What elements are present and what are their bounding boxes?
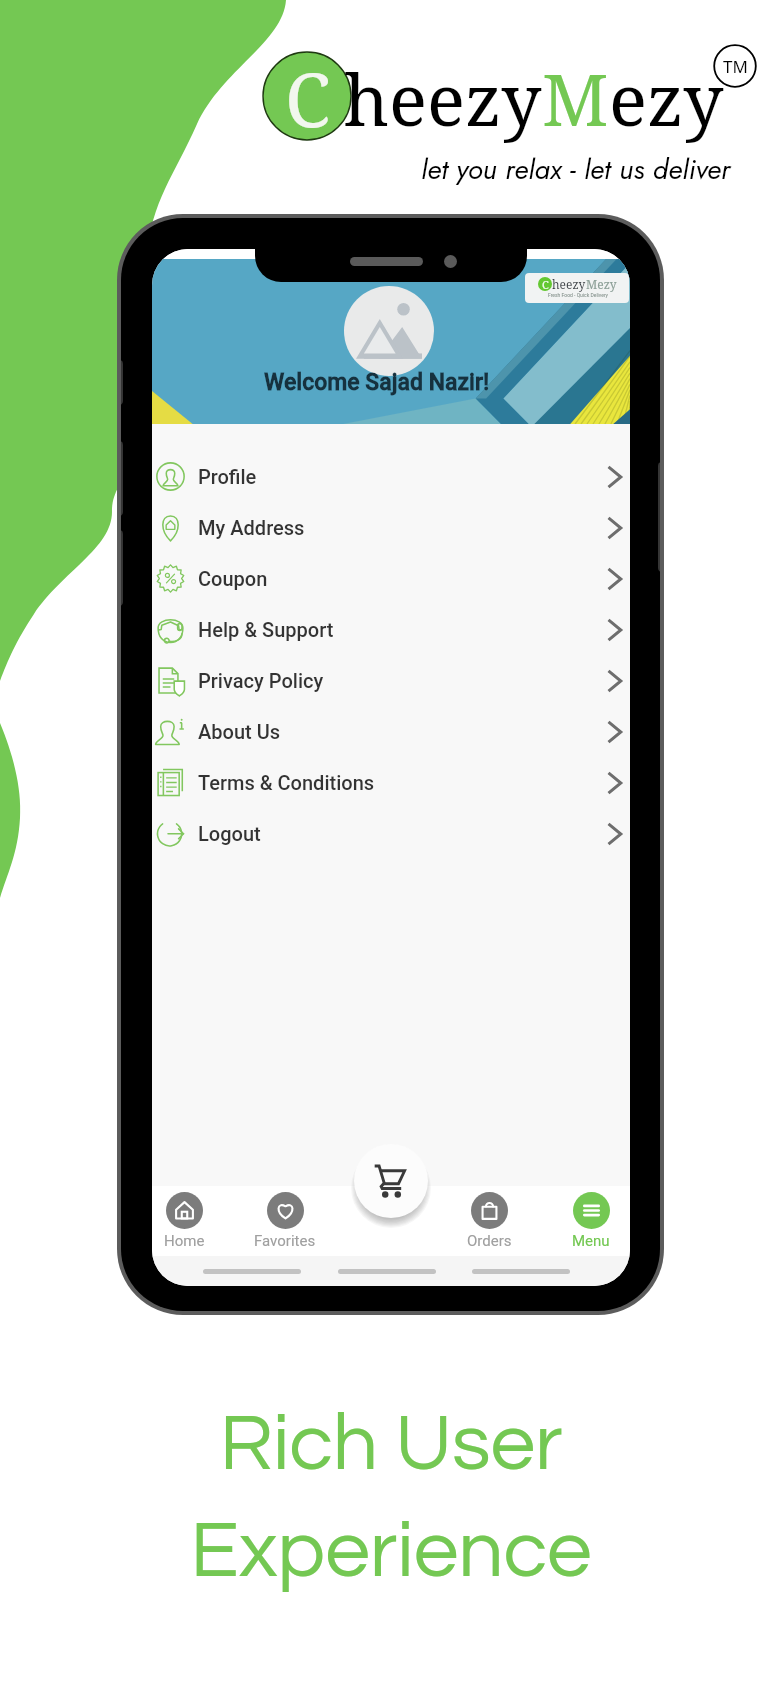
staticText: About Us — [198, 720, 281, 743]
staticText: ezy — [609, 50, 724, 147]
staticText: Help & Support — [198, 618, 334, 641]
staticText: C — [542, 277, 549, 291]
staticText: Experience — [190, 1510, 592, 1592]
staticText: Home — [164, 1232, 205, 1250]
button[interactable]: Favorites — [240, 1186, 330, 1256]
button[interactable]: Coupon — [152, 553, 630, 604]
button[interactable]: Home — [152, 1186, 229, 1256]
button[interactable]: Terms & Conditions — [152, 757, 630, 808]
staticText: C — [285, 48, 331, 138]
staticText: Favorites — [254, 1232, 316, 1250]
button[interactable]: Menu — [546, 1186, 630, 1256]
button[interactable]: Help & Support — [152, 604, 630, 655]
staticText: Menu — [572, 1232, 610, 1250]
button[interactable]: About Us — [152, 706, 630, 757]
staticText: let you relax - let us deliver — [421, 149, 731, 189]
staticText: heezy — [552, 276, 586, 292]
staticText: Fresh Food - Quick Delivery — [548, 292, 608, 298]
button[interactable]: Profile — [152, 451, 630, 502]
staticText: Rich User — [219, 1403, 563, 1485]
staticText: TM — [723, 55, 748, 78]
staticText: Mezy — [586, 276, 617, 292]
staticText: Coupon — [198, 567, 268, 590]
button[interactable]: Cart — [354, 1144, 428, 1218]
button[interactable]: My Address — [152, 502, 630, 553]
staticText: Terms & Conditions — [198, 771, 375, 794]
button[interactable]: Logout — [152, 808, 630, 859]
staticText: Welcome Sajad Nazir! — [264, 369, 490, 396]
staticText: Profile — [198, 465, 257, 488]
button[interactable]: Orders — [444, 1186, 534, 1256]
staticText: Orders — [467, 1232, 512, 1250]
staticText: M — [542, 50, 609, 147]
staticText: My Address — [198, 516, 305, 539]
staticText: Logout — [198, 822, 261, 845]
staticText: Privacy Policy — [198, 669, 324, 692]
staticText: heezy — [344, 50, 542, 147]
button[interactable]: Privacy Policy — [152, 655, 630, 706]
